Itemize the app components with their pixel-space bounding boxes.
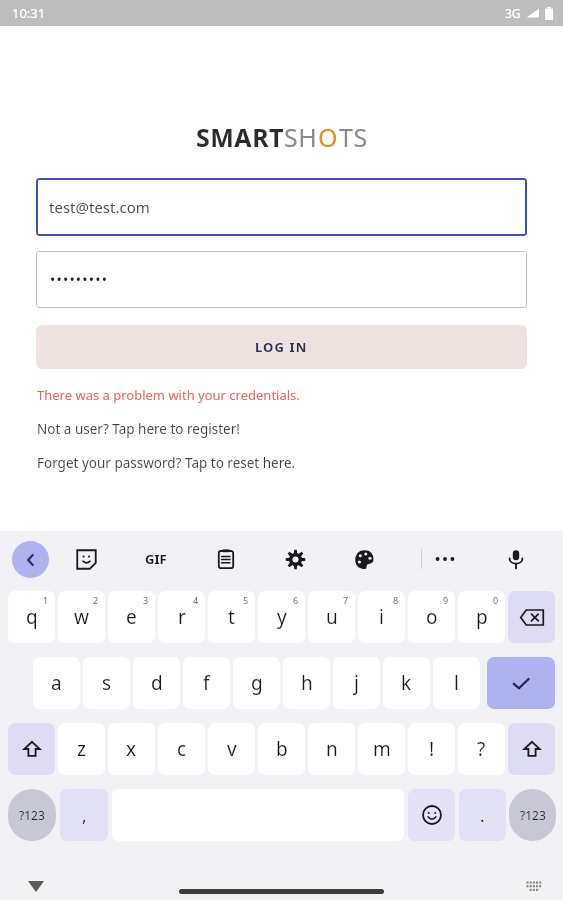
button[interactable]: Comma	[60, 789, 108, 841]
button[interactable]: c	[158, 723, 205, 775]
staticText: test@test.com	[49, 197, 150, 217]
staticText: s	[102, 670, 112, 696]
button[interactable]: Enter	[487, 657, 555, 709]
staticText: w	[74, 604, 89, 630]
button[interactable]: Voice input	[499, 542, 533, 576]
button[interactable]: d	[133, 657, 180, 709]
button[interactable]: Not a user? Tap here to register!	[37, 420, 240, 438]
button[interactable]: Hide keyboard	[22, 872, 50, 900]
button[interactable]: j	[333, 657, 380, 709]
staticText: j	[354, 670, 359, 696]
button[interactable]: !	[408, 723, 455, 775]
staticText: GIF	[145, 550, 167, 568]
button[interactable]: v	[208, 723, 255, 775]
button[interactable]: q	[8, 591, 55, 643]
button[interactable]: •••••••••	[36, 251, 527, 308]
button[interactable]: Period	[459, 789, 506, 841]
button[interactable]: b	[258, 723, 305, 775]
staticText: .	[480, 804, 485, 827]
button[interactable]: o	[408, 591, 455, 643]
button[interactable]: test@test.com	[36, 178, 527, 236]
button[interactable]: p	[458, 591, 505, 643]
staticText: ,	[82, 804, 87, 827]
button[interactable]: g	[233, 657, 280, 709]
button[interactable]: Shift	[8, 723, 55, 775]
staticText: 4	[193, 594, 199, 606]
button[interactable]: ?123	[509, 789, 556, 841]
staticText: LOG IN	[255, 338, 308, 356]
button[interactable]: Themes	[347, 542, 381, 576]
button[interactable]: Clipboard	[209, 542, 243, 576]
button[interactable]: r	[158, 591, 205, 643]
button[interactable]: f	[183, 657, 230, 709]
staticText: z	[77, 736, 86, 762]
staticText: p	[476, 604, 488, 630]
button[interactable]: Forget your password? Tap to reset here.	[37, 454, 296, 472]
staticText: 9	[443, 594, 449, 606]
button[interactable]: More options	[428, 542, 462, 576]
staticText: 8	[393, 594, 399, 606]
staticText: x	[126, 736, 137, 762]
button[interactable]: w	[58, 591, 105, 643]
staticText: o	[426, 604, 438, 630]
staticText: c	[177, 736, 187, 762]
staticText: 7	[343, 594, 349, 606]
staticText: •••••••••	[50, 270, 109, 289]
staticText: TS	[339, 120, 368, 154]
staticText: h	[301, 670, 313, 696]
button[interactable]: Emoji	[408, 789, 455, 841]
button[interactable]: i	[358, 591, 405, 643]
staticText: 1	[43, 594, 49, 606]
button[interactable]: t	[208, 591, 255, 643]
staticText: q	[26, 604, 38, 630]
staticText: ?123	[520, 807, 546, 823]
button[interactable]: x	[108, 723, 155, 775]
button[interactable]: l	[433, 657, 480, 709]
button[interactable]: k	[383, 657, 430, 709]
staticText: a	[51, 670, 62, 696]
staticText: 3	[143, 594, 149, 606]
staticText: Forget your password? Tap to reset here.	[37, 454, 296, 472]
button[interactable]: a	[33, 657, 80, 709]
staticText: k	[401, 670, 412, 696]
button[interactable]: y	[258, 591, 305, 643]
button[interactable]: LOG IN	[36, 325, 527, 369]
staticText: 5	[243, 594, 249, 606]
staticText: 0	[493, 594, 499, 606]
button[interactable]: u	[308, 591, 355, 643]
staticText: Not a user? Tap here to register!	[37, 420, 240, 438]
button[interactable]: m	[358, 723, 405, 775]
staticText: ?	[477, 736, 486, 762]
staticText: n	[326, 736, 338, 762]
button[interactable]: Home	[179, 889, 384, 894]
staticText: d	[151, 670, 163, 696]
button[interactable]: s	[83, 657, 130, 709]
staticText: b	[276, 736, 288, 762]
button[interactable]: Backspace	[508, 591, 555, 643]
button[interactable]: ?123	[8, 789, 56, 841]
staticText: !	[429, 736, 435, 762]
button[interactable]: ?	[458, 723, 505, 775]
button[interactable]: Stickers	[69, 542, 103, 576]
button[interactable]: Switch keyboard	[521, 873, 547, 899]
staticText: SMART	[196, 120, 284, 154]
staticText: m	[373, 736, 391, 762]
staticText: g	[251, 670, 263, 696]
button[interactable]: h	[283, 657, 330, 709]
button[interactable]: Back	[12, 541, 49, 578]
button[interactable]: e	[108, 591, 155, 643]
staticText: r	[178, 604, 186, 630]
button[interactable]: Settings	[278, 542, 312, 576]
staticText: y	[277, 604, 287, 630]
button[interactable]: z	[58, 723, 105, 775]
staticText: 6	[293, 594, 299, 606]
staticText: 3G	[505, 5, 521, 21]
staticText: l	[454, 670, 459, 696]
staticText: 2	[93, 594, 99, 606]
button[interactable]: n	[308, 723, 355, 775]
button[interactable]: GIF	[139, 542, 173, 576]
button[interactable]: Shift	[508, 723, 555, 775]
staticText: There was a problem with your credential…	[37, 386, 300, 404]
staticText: e	[126, 604, 137, 630]
